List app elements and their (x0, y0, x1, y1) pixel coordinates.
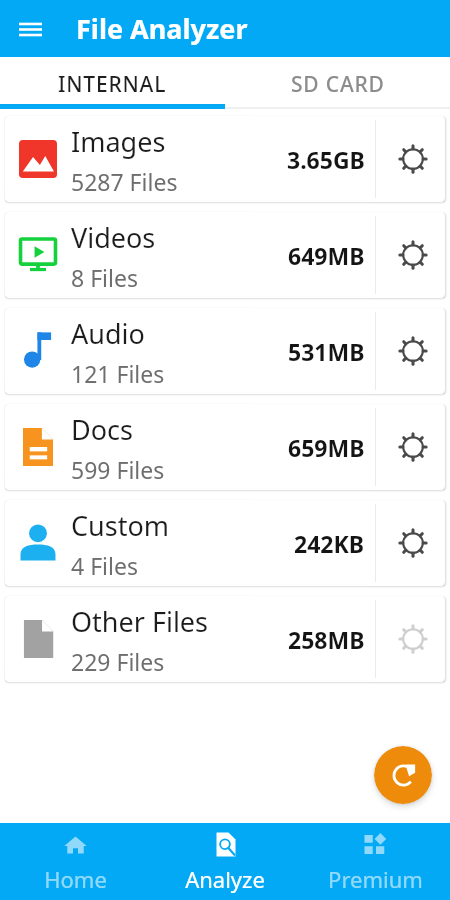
staticText: 258MB (288, 624, 365, 655)
staticText: 229 Files (71, 646, 165, 677)
button[interactable]: Settings (378, 212, 445, 298)
button[interactable]: Refresh (374, 746, 432, 804)
button[interactable]: SD CARD (225, 57, 450, 104)
staticText: Custom (71, 507, 170, 544)
button[interactable]: Settings (378, 308, 445, 394)
staticText: 121 Files (71, 358, 165, 389)
button[interactable]: Other Files (5, 596, 445, 682)
staticText: Audio (71, 315, 145, 352)
staticText: 8 Files (71, 262, 138, 293)
staticText: 599 Files (71, 454, 165, 485)
staticText: Videos (71, 219, 156, 256)
staticText: Home (44, 864, 107, 894)
button[interactable]: Settings (378, 500, 445, 586)
button[interactable]: Images (5, 116, 445, 202)
staticText: INTERNAL (58, 70, 167, 99)
button[interactable]: Settings (378, 596, 445, 682)
staticText: 531MB (288, 336, 365, 367)
button[interactable]: Audio (5, 308, 445, 394)
button[interactable]: Docs (5, 404, 445, 490)
staticText: 4 Files (71, 550, 138, 581)
button[interactable]: Premium (300, 823, 450, 900)
staticText: Premium (328, 864, 423, 894)
button[interactable]: Settings (378, 404, 445, 490)
staticText: Images (71, 123, 166, 160)
button[interactable]: Analyze (150, 823, 300, 900)
staticText: 659MB (288, 432, 365, 463)
button[interactable]: Home (0, 823, 150, 900)
staticText: 242KB (294, 528, 365, 559)
button[interactable]: INTERNAL (0, 57, 225, 104)
staticText: File Analyzer (76, 10, 248, 47)
button[interactable]: Custom (5, 500, 445, 586)
staticText: Docs (71, 411, 133, 448)
button[interactable]: Menu (8, 7, 52, 51)
staticText: 649MB (288, 240, 365, 271)
staticText: 5287 Files (71, 166, 178, 197)
button[interactable]: Videos (5, 212, 445, 298)
staticText: 3.65GB (287, 144, 365, 175)
staticText: SD CARD (291, 70, 385, 99)
staticText: Other Files (71, 603, 209, 640)
button[interactable]: Settings (378, 116, 445, 202)
staticText: Analyze (185, 864, 265, 894)
